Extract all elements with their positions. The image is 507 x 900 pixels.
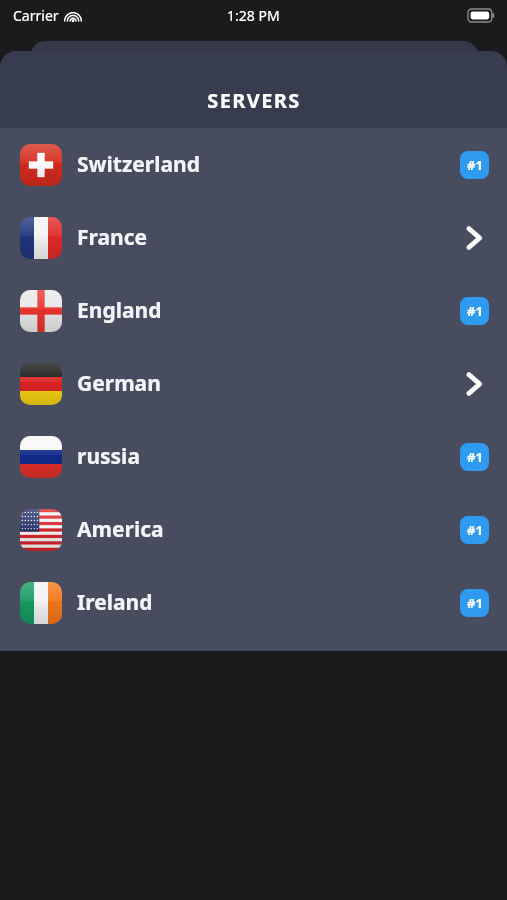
button[interactable]: #1 bbox=[460, 297, 489, 325]
staticText: France bbox=[77, 223, 459, 252]
button[interactable]: Open details bbox=[459, 223, 489, 253]
button[interactable]: #1 bbox=[460, 151, 489, 179]
button[interactable]: #1 bbox=[460, 443, 489, 471]
staticText: russia bbox=[77, 442, 460, 471]
staticText: Switzerland bbox=[77, 150, 460, 179]
button[interactable]: russia bbox=[0, 420, 507, 493]
button[interactable]: Open details bbox=[459, 369, 489, 399]
button[interactable]: #1 bbox=[460, 589, 489, 617]
staticText: America bbox=[77, 515, 460, 544]
button[interactable]: Switzerland bbox=[0, 128, 507, 201]
button[interactable]: German bbox=[0, 347, 507, 420]
staticText: England bbox=[77, 296, 460, 325]
staticText: #1 bbox=[467, 521, 483, 539]
button[interactable]: France bbox=[0, 201, 507, 274]
staticText: SERVERS bbox=[207, 87, 301, 114]
button[interactable]: #1 bbox=[460, 516, 489, 544]
staticText: #1 bbox=[467, 594, 483, 612]
staticText: German bbox=[77, 369, 459, 398]
button[interactable]: England bbox=[0, 274, 507, 347]
staticText: #1 bbox=[467, 156, 483, 174]
button[interactable]: America bbox=[0, 493, 507, 566]
staticText: #1 bbox=[467, 302, 483, 320]
button[interactable]: Ireland bbox=[0, 566, 507, 639]
staticText: #1 bbox=[467, 448, 483, 466]
staticText: Ireland bbox=[77, 588, 460, 617]
staticText: 1:28 PM bbox=[227, 6, 280, 25]
staticText: Carrier bbox=[13, 6, 59, 25]
